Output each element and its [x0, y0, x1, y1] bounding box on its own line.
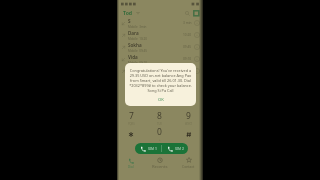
button[interactable]: OK — [154, 96, 168, 104]
staticText: Congratulations! You've received a 29.35… — [128, 68, 193, 93]
button[interactable]: Call details — [194, 20, 200, 26]
staticText: 09:45 — [183, 45, 192, 49]
button[interactable]: Filter calls — [136, 11, 140, 15]
button[interactable]: Dial — [117, 156, 145, 170]
staticText: Mobile 10:20 — [128, 37, 147, 41]
button[interactable]: S — [117, 17, 203, 29]
button[interactable]: Sokha — [117, 41, 203, 53]
staticText: Tod — [123, 9, 133, 16]
button[interactable]: Search — [183, 9, 191, 17]
staticText: WXYZ — [185, 122, 192, 126]
staticText: 9 — [186, 110, 191, 122]
button[interactable]: SIM 1 — [135, 143, 161, 154]
staticText: Mobile 09:45 — [128, 49, 147, 53]
button[interactable]: Call details — [194, 56, 200, 62]
button[interactable]: Vida — [117, 53, 203, 65]
staticText: Recents — [152, 164, 168, 170]
staticText: Vida — [128, 54, 138, 60]
staticText: PQRS — [128, 122, 135, 126]
staticText: OK — [158, 97, 164, 103]
button[interactable]: SIM 2 — [162, 143, 188, 154]
staticText: 7 — [129, 110, 134, 122]
staticText: SIM 2 — [175, 146, 184, 151]
button[interactable]: Dara — [117, 29, 203, 41]
staticText: Dial — [128, 165, 134, 169]
button[interactable]: 9 — [174, 110, 203, 126]
button[interactable]: Call details — [194, 68, 200, 74]
staticText: 08:55 — [183, 69, 192, 73]
staticText: Mobile 08:55 — [128, 73, 147, 77]
staticText: Mobile 09:10 — [128, 61, 147, 65]
button[interactable]: 7 — [117, 110, 145, 126]
staticText: Mom — [128, 66, 140, 72]
staticText: TUV — [157, 122, 162, 126]
button[interactable] — [174, 126, 203, 142]
staticText: Contact — [182, 164, 195, 169]
staticText: 10:20 — [183, 33, 192, 37]
button[interactable]: Mom — [117, 65, 203, 77]
staticText: 8 — [157, 110, 162, 122]
staticText: Sokha — [128, 42, 142, 48]
button[interactable]: Recents — [145, 156, 174, 170]
staticText: Dara — [128, 30, 139, 36]
button[interactable]: Call details — [194, 44, 200, 50]
staticText: SIM 1 — [148, 146, 157, 151]
button[interactable]: Contact — [174, 156, 203, 170]
staticText: 0 — [157, 126, 162, 138]
button[interactable] — [117, 126, 145, 142]
staticText: S — [128, 18, 131, 24]
staticText: 3 min — [183, 21, 192, 25]
staticText: 09:10 — [183, 57, 192, 61]
button[interactable]: 0 — [145, 126, 174, 142]
staticText: Mobile 3min — [128, 25, 147, 29]
button[interactable]: Call details — [194, 32, 200, 38]
button[interactable]: 8 — [145, 110, 174, 126]
button[interactable]: Scan QR code — [192, 9, 200, 17]
